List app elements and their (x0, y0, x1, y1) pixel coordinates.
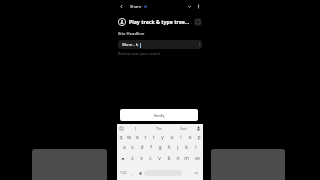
button[interactable]: Edit (194, 18, 202, 26)
button[interactable]: Backspace (191, 153, 203, 164)
staticText: , (132, 171, 133, 176)
staticText: Share (130, 4, 142, 10)
staticText: m (184, 155, 189, 162)
button[interactable]: a (120, 142, 128, 153)
staticText: w (127, 134, 131, 141)
button[interactable]: v (155, 153, 164, 164)
button[interactable]: Shift (117, 153, 128, 164)
staticText: God (180, 126, 187, 131)
staticText: l (195, 144, 197, 151)
staticText: r (144, 134, 147, 141)
staticText: g (158, 144, 162, 151)
button[interactable]: Verify (120, 109, 198, 121)
button[interactable]: Emoji (136, 167, 144, 179)
staticText: j (177, 144, 179, 151)
staticText: d (140, 144, 144, 151)
staticText: Verify (154, 113, 165, 118)
staticText: i (180, 134, 182, 141)
staticText: f (150, 144, 152, 151)
staticText: h (167, 144, 171, 151)
button[interactable]: r (141, 132, 149, 142)
staticText: u (170, 134, 174, 141)
button[interactable]: Expand (186, 3, 193, 10)
button[interactable]: ?123 (118, 167, 129, 179)
staticText: v (158, 155, 161, 162)
button[interactable]: i (176, 132, 185, 142)
button[interactable]: n (173, 153, 182, 164)
staticText: Restrict uses your search (118, 51, 161, 56)
staticText: t (153, 134, 155, 141)
staticText: ?123 (120, 171, 127, 175)
button[interactable]: g (155, 142, 164, 153)
button[interactable]: d (137, 142, 146, 153)
button[interactable]: Mum - b (118, 40, 202, 49)
staticText: q (119, 134, 123, 141)
button[interactable]: Voice input (195, 125, 201, 131)
button[interactable]: e (133, 132, 141, 142)
staticText: Play track & type tree… (129, 18, 190, 25)
staticText: e (136, 134, 139, 141)
staticText: p (197, 134, 201, 141)
button[interactable]: w (125, 132, 133, 142)
button[interactable]: j (173, 142, 182, 153)
staticText: a (123, 144, 126, 151)
button[interactable]: q (117, 132, 125, 142)
button[interactable]: , (129, 167, 136, 179)
staticText: x (140, 155, 143, 162)
button[interactable]: f (146, 142, 155, 153)
button[interactable]: k (182, 142, 191, 153)
staticText: c (149, 155, 152, 162)
button[interactable]: p (194, 132, 203, 142)
staticText: o (188, 134, 192, 141)
staticText: s (131, 144, 134, 151)
button[interactable]: More options (195, 3, 202, 10)
staticText: . (186, 171, 187, 176)
staticText: n (176, 155, 180, 162)
button[interactable]: o (185, 132, 194, 142)
staticText: The (156, 126, 162, 131)
staticText: Mum - b (122, 42, 139, 48)
button[interactable]: y (158, 132, 167, 142)
button[interactable]: l (191, 142, 200, 153)
button[interactable]: s (128, 142, 137, 153)
button[interactable]: Enter (190, 167, 202, 179)
button[interactable]: h (164, 142, 173, 153)
button[interactable]: m (182, 153, 191, 164)
staticText: k (185, 144, 188, 151)
staticText: I (135, 126, 137, 131)
button[interactable]: Back (118, 3, 125, 10)
button[interactable]: t (149, 132, 158, 142)
button[interactable]: Keyboard settings (119, 126, 124, 131)
staticText: Site Headline (118, 31, 145, 37)
staticText: y (161, 134, 164, 141)
button[interactable]: u (167, 132, 176, 142)
staticText: z (131, 155, 134, 162)
button[interactable]: z (128, 153, 137, 164)
button[interactable]: b (164, 153, 173, 164)
staticText: b (167, 155, 171, 162)
button[interactable]: x (137, 153, 146, 164)
button[interactable]: c (146, 153, 155, 164)
